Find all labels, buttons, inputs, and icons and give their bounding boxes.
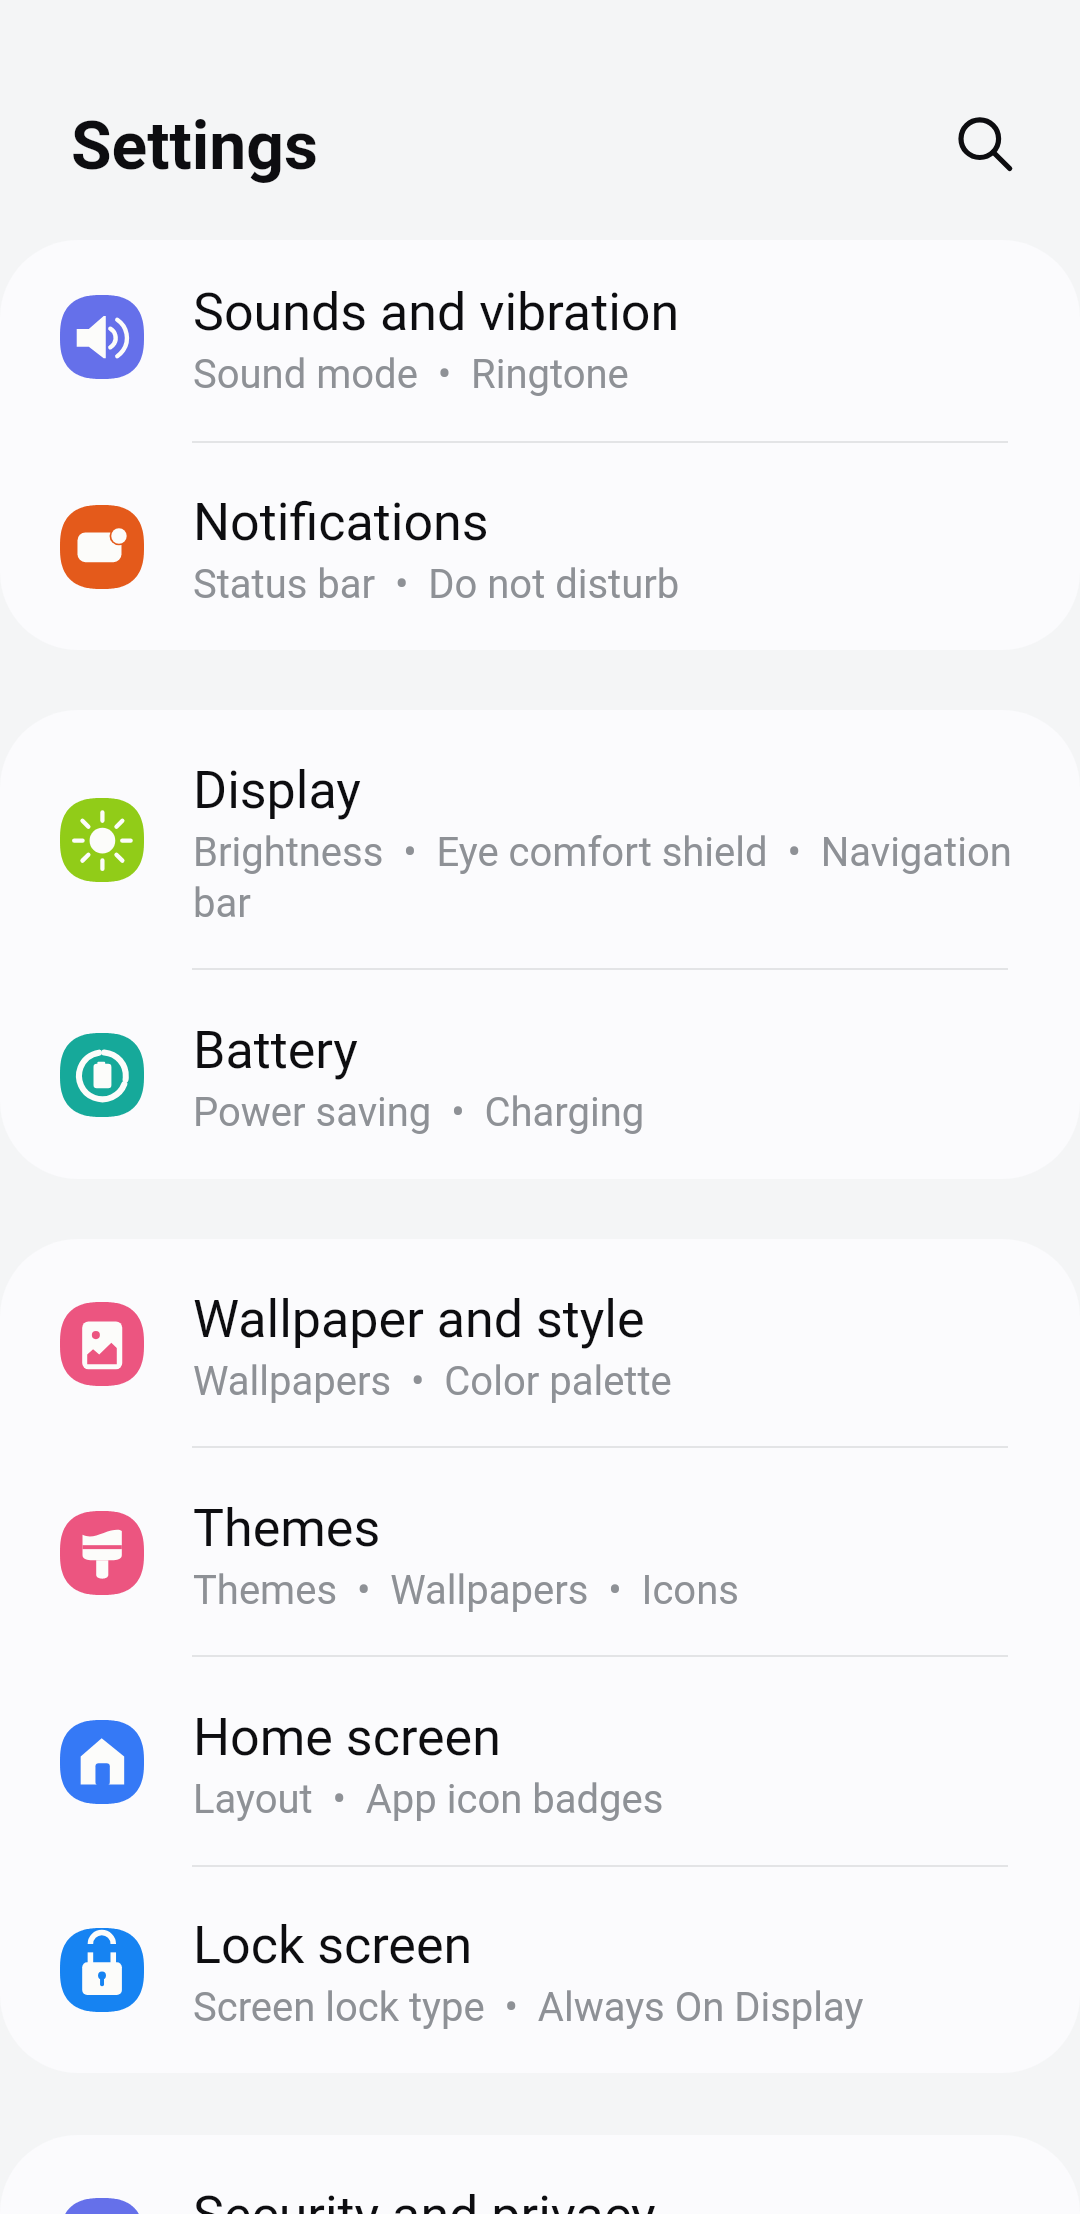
button[interactable]: Security and privacy — [0, 2135, 1080, 2214]
staticText: Wallpapers • Color palette — [193, 1358, 672, 1405]
staticText: Battery — [193, 1020, 358, 1081]
staticText: Lock screen — [193, 1915, 473, 1976]
staticText: Themes — [193, 1498, 381, 1559]
button[interactable]: Search — [932, 90, 1028, 186]
staticText: Layout • App icon badges — [193, 1776, 664, 1823]
button[interactable]: Themes — [0, 1448, 1080, 1657]
staticText: Settings — [71, 108, 318, 185]
button[interactable]: Notifications — [0, 443, 1080, 650]
button[interactable]: Wallpaper and style — [0, 1239, 1080, 1448]
staticText: Wallpaper and style — [193, 1289, 645, 1350]
staticText: Brightness • Eye comfort shield • Naviga… — [193, 829, 1016, 927]
staticText: Home screen — [193, 1707, 501, 1768]
staticText: Themes • Wallpapers • Icons — [193, 1567, 739, 1614]
staticText: Display — [193, 760, 361, 821]
button[interactable]: Display — [0, 710, 1080, 970]
staticText: Notifications — [193, 492, 489, 553]
staticText: Status bar • Do not disturb — [193, 561, 680, 608]
button[interactable]: Lock screen — [0, 1867, 1080, 2073]
staticText: Screen lock type • Always On Display — [193, 1984, 864, 2031]
button[interactable]: Home screen — [0, 1657, 1080, 1867]
button[interactable]: Battery — [0, 970, 1080, 1179]
staticText: Sound mode • Ringtone — [193, 351, 629, 398]
staticText: Power saving • Charging — [193, 1089, 645, 1136]
button[interactable]: Sounds and vibration — [0, 240, 1080, 443]
staticText: Security and privacy — [193, 2185, 656, 2214]
staticText: Sounds and vibration — [193, 282, 680, 343]
